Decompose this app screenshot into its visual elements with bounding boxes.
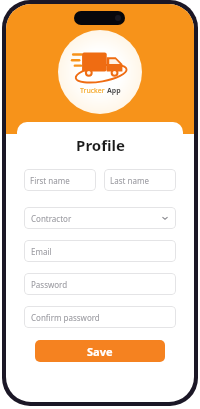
button[interactable]: First name <box>24 169 96 191</box>
button[interactable]: Save <box>35 340 165 362</box>
button[interactable]: Last name <box>104 169 176 191</box>
button[interactable]: Confirm password <box>24 306 176 328</box>
staticText: Email <box>31 246 52 257</box>
staticText: Trucker <box>80 86 107 96</box>
staticText: Profile <box>76 135 125 155</box>
staticText: Password <box>31 279 68 290</box>
button[interactable]: Password <box>24 273 176 295</box>
staticText: App <box>107 86 121 96</box>
button[interactable]: Email <box>24 240 176 262</box>
staticText: Last name <box>110 175 149 186</box>
button[interactable]: Contractor <box>24 207 176 229</box>
staticText: Save <box>87 344 113 359</box>
staticText: Contractor <box>31 213 161 224</box>
staticText: First name <box>30 175 70 186</box>
staticText: Confirm password <box>31 312 100 323</box>
